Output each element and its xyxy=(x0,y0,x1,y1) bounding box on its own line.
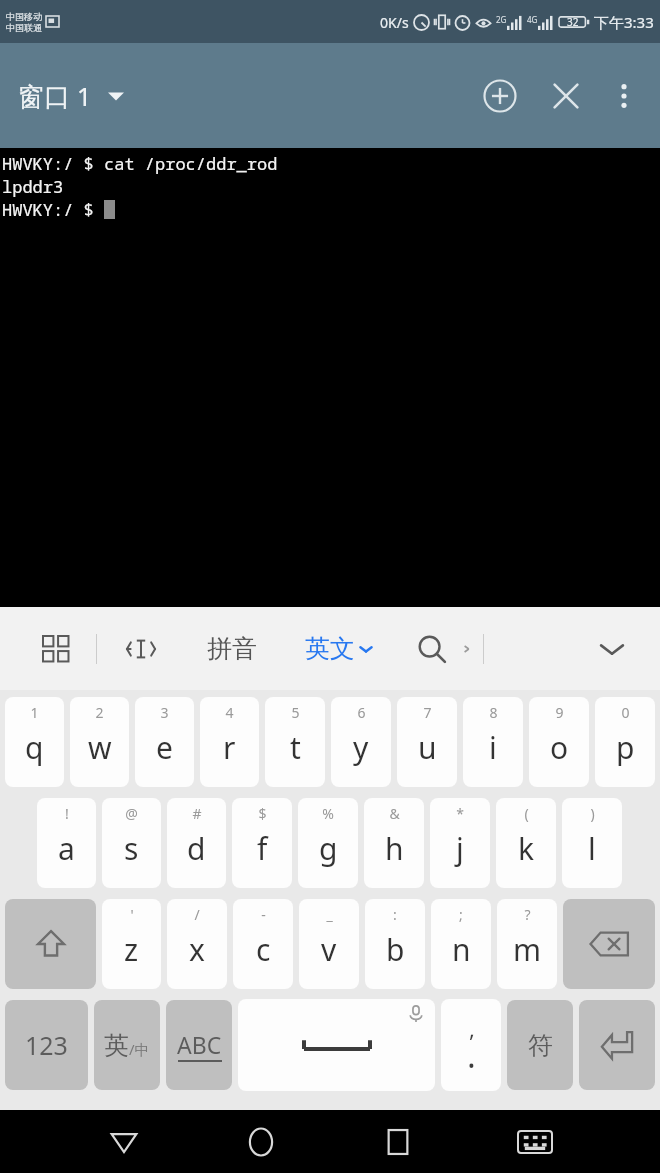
staticText: : xyxy=(393,905,397,924)
staticText: ABC xyxy=(177,1029,222,1060)
button[interactable]: / xyxy=(167,899,227,989)
button[interactable]: ) xyxy=(562,798,622,888)
staticText: ! xyxy=(65,804,69,823)
staticText: v xyxy=(321,929,337,970)
button[interactable]: 符 xyxy=(507,1000,573,1090)
button[interactable]: 窗口 1 xyxy=(18,78,124,114)
button[interactable]: 3 xyxy=(135,697,194,787)
staticText: 2G xyxy=(496,14,507,25)
staticText: @ xyxy=(125,804,138,823)
staticText: / xyxy=(194,905,200,924)
button[interactable]: % xyxy=(298,798,358,888)
staticText: HWVKY:/ $ xyxy=(2,198,104,221)
button[interactable]: Shift xyxy=(5,899,96,989)
button[interactable]: # xyxy=(167,798,226,888)
staticText: • xyxy=(468,1053,475,1078)
button[interactable]: HWVKY:/ $ cat /proc/ddr_rod xyxy=(0,148,660,607)
staticText: # xyxy=(192,804,202,823)
button[interactable]: 8 xyxy=(463,697,523,787)
staticText: x xyxy=(189,929,205,970)
staticText: ) xyxy=(590,804,595,823)
staticText: k xyxy=(518,828,535,869)
staticText: u xyxy=(418,727,437,768)
button[interactable]: $ xyxy=(232,798,292,888)
button[interactable]: ? xyxy=(497,899,557,989)
button[interactable]: Punctuation xyxy=(441,999,501,1091)
button[interactable]: Cursor move xyxy=(115,623,167,675)
staticText: ( xyxy=(524,804,529,823)
staticText: ? xyxy=(524,905,531,924)
staticText: b xyxy=(386,929,405,970)
staticText: 0 xyxy=(621,703,630,722)
button[interactable]: Switch keyboard xyxy=(502,1110,568,1173)
staticText: s xyxy=(124,828,139,869)
button[interactable]: Home xyxy=(228,1110,294,1173)
button[interactable]: - xyxy=(233,899,293,989)
button[interactable]: 6 xyxy=(331,697,391,787)
staticText: g xyxy=(319,828,338,869)
button[interactable]: 123 xyxy=(5,1000,88,1090)
staticText: ; xyxy=(459,905,463,924)
staticText: d xyxy=(187,828,206,869)
button[interactable]: 拼音 xyxy=(199,625,265,672)
button[interactable]: & xyxy=(364,798,424,888)
staticText: 中国移动 xyxy=(6,11,42,22)
button[interactable]: : xyxy=(365,899,425,989)
button[interactable]: 7 xyxy=(397,697,457,787)
button[interactable]: @ xyxy=(102,798,161,888)
other: Backspace xyxy=(588,929,630,959)
button[interactable]: Recent apps xyxy=(365,1110,431,1173)
button[interactable]: Space xyxy=(238,999,435,1091)
staticText: n xyxy=(452,929,471,970)
button[interactable]: More options xyxy=(598,70,650,122)
staticText: 下午3:33 xyxy=(594,12,654,32)
button[interactable]: 英文 xyxy=(299,625,379,672)
staticText: /中 xyxy=(129,1039,150,1059)
staticText: 英文 xyxy=(305,633,355,664)
button[interactable]: Back xyxy=(91,1110,157,1173)
staticText: 窗口 1 xyxy=(18,78,92,114)
button[interactable]: * xyxy=(430,798,490,888)
staticText: 8 xyxy=(489,703,498,722)
button[interactable]: ! xyxy=(37,798,96,888)
other: Enter xyxy=(599,1027,635,1063)
staticText: t xyxy=(290,727,301,768)
staticText: q xyxy=(25,727,44,768)
staticText: m xyxy=(513,929,542,970)
staticText: f xyxy=(257,828,268,869)
staticText: y xyxy=(353,727,369,768)
button[interactable]: 2 xyxy=(70,697,129,787)
button[interactable]: Search xyxy=(405,622,459,676)
staticText: 6 xyxy=(357,703,366,722)
button[interactable]: ( xyxy=(496,798,556,888)
button[interactable]: Close window xyxy=(538,68,594,124)
button[interactable]: ; xyxy=(431,899,491,989)
staticText: r xyxy=(223,727,236,768)
button[interactable]: 4 xyxy=(200,697,259,787)
button[interactable]: New window xyxy=(472,68,528,124)
staticText: h xyxy=(385,828,404,869)
button[interactable]: ABC xyxy=(166,1000,232,1090)
button[interactable]: Enter xyxy=(579,1000,655,1090)
button[interactable]: ' xyxy=(102,899,161,989)
staticText: 123 xyxy=(25,1028,68,1062)
staticText: c xyxy=(256,929,271,970)
staticText: l xyxy=(588,828,596,869)
staticText: o xyxy=(550,727,569,768)
button[interactable]: Backspace xyxy=(563,899,655,989)
button[interactable]: 0 xyxy=(595,697,655,787)
staticText: 5 xyxy=(291,703,300,722)
button[interactable]: _ xyxy=(299,899,359,989)
button[interactable]: Keyboard layouts xyxy=(30,623,82,675)
staticText: 符 xyxy=(528,1030,553,1061)
button[interactable]: 9 xyxy=(529,697,589,787)
button[interactable]: 1 xyxy=(5,697,64,787)
button[interactable]: Hide keyboard xyxy=(582,619,642,679)
staticText: * xyxy=(456,804,464,823)
staticText: 32 xyxy=(567,15,579,29)
staticText: 拼音 xyxy=(207,633,257,664)
button[interactable]: 5 xyxy=(265,697,325,787)
staticText: % xyxy=(322,804,334,823)
button[interactable]: 英 xyxy=(94,1000,160,1090)
staticText: w xyxy=(88,727,112,768)
